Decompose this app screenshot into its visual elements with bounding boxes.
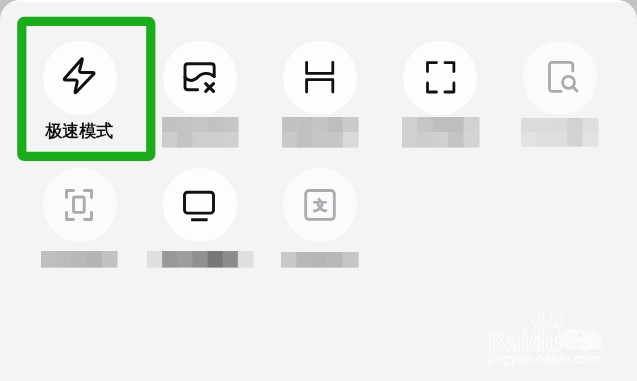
button[interactable]: Collapse toolbar: [261, 36, 379, 148]
button[interactable]: Block images: [141, 36, 259, 148]
staticText: 经验: [561, 328, 601, 353]
button[interactable]: Desktop site: [141, 163, 259, 275]
button[interactable]: Full screen: [381, 36, 499, 148]
button[interactable]: Translate page: [261, 163, 379, 275]
staticText: Baidu: [488, 323, 562, 358]
staticText: 文: [283, 197, 357, 217]
button[interactable]: Scan code: [21, 163, 139, 275]
staticText: 极速模式: [20, 121, 138, 147]
button[interactable]: Find in page: [501, 36, 619, 148]
staticText: 文: [283, 197, 357, 217]
button[interactable]: Speed mode: [21, 36, 139, 148]
